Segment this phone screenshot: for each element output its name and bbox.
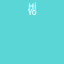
- staticText: Hi: [28, 1, 36, 12]
- staticText: Yo: [27, 7, 36, 17]
